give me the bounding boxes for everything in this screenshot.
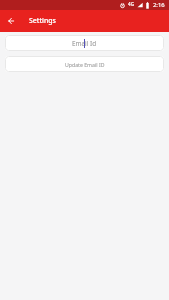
button[interactable]: Email Id <box>5 35 164 51</box>
staticText: 4G <box>128 1 134 7</box>
staticText: Update Email ID <box>65 61 105 68</box>
button[interactable]: Update Email ID <box>5 56 164 72</box>
staticText: 2:16 <box>153 1 165 9</box>
staticText: Settings <box>29 16 56 25</box>
button[interactable]: Back <box>4 14 18 28</box>
staticText: Email Id <box>72 39 97 48</box>
